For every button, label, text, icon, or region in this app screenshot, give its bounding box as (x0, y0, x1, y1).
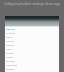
button[interactable]: Access (5, 50, 59, 54)
staticText: Access (6, 51, 14, 54)
staticText: Display (6, 43, 15, 46)
staticText: Backup (6, 67, 15, 70)
button[interactable]: Display (5, 42, 59, 46)
staticText: Privacy (6, 39, 14, 42)
staticText: About (6, 55, 13, 58)
button[interactable]: Account (5, 30, 59, 34)
button[interactable]: Language (5, 62, 59, 66)
staticText: Collapsing toolbar settings demo app (4, 2, 61, 6)
staticText: Data (6, 47, 12, 50)
button[interactable]: About (5, 54, 59, 58)
button[interactable]: Data (5, 46, 59, 50)
staticText: Account (6, 31, 16, 34)
staticText: Storage (6, 59, 15, 62)
button[interactable]: Alerts (5, 34, 59, 38)
staticText: General (6, 27, 15, 30)
staticText: Alerts (6, 35, 13, 38)
staticText: Language (6, 63, 18, 66)
button[interactable]: Privacy (5, 38, 59, 42)
button[interactable]: Storage (5, 58, 59, 62)
button[interactable]: Backup (5, 66, 59, 70)
